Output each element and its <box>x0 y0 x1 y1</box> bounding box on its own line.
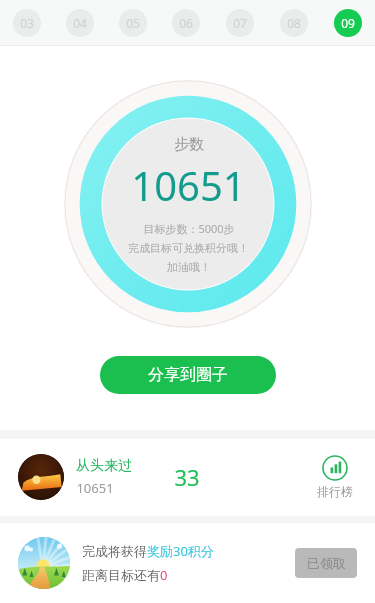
staticText: 03 <box>20 15 34 31</box>
staticText: 04 <box>73 15 87 31</box>
staticText: 09 <box>341 15 355 31</box>
staticText: 06 <box>179 15 193 31</box>
staticText: 距离目标还有0 <box>82 566 168 584</box>
button[interactable]: 排行榜 <box>313 451 357 503</box>
button[interactable]: 04 <box>66 9 94 37</box>
button[interactable]: 分享到圈子 <box>100 356 276 394</box>
staticText: 已领取 <box>307 555 346 571</box>
staticText: 从头来过 <box>76 457 132 475</box>
staticText: 排行榜 <box>317 484 353 499</box>
button[interactable]: 09 <box>334 9 362 37</box>
button[interactable]: 完成将获得奖励30积分 <box>0 523 375 603</box>
button[interactable]: 08 <box>280 9 308 37</box>
staticText: 07 <box>233 15 247 31</box>
staticText: 05 <box>126 15 140 31</box>
button[interactable]: 06 <box>172 9 200 37</box>
button[interactable]: 05 <box>119 9 147 37</box>
staticText: 加油哦！ <box>167 260 211 274</box>
button[interactable]: 07 <box>226 9 254 37</box>
button[interactable]: 已领取 <box>295 548 357 578</box>
staticText: 10651 <box>76 479 114 497</box>
staticText: 08 <box>287 15 301 31</box>
staticText: 完成目标可兑换积分哦！ <box>128 241 249 255</box>
staticText: 完成将获得奖励30积分 <box>82 542 214 560</box>
staticText: 分享到圈子 <box>148 365 228 385</box>
staticText: 10651 <box>131 158 246 212</box>
staticText: 目标步数：5000步 <box>143 221 235 236</box>
button[interactable]: 03 <box>13 9 41 37</box>
button[interactable]: 从头来过 <box>0 438 375 516</box>
staticText: 33 <box>174 462 200 492</box>
other: 排行榜 <box>322 455 348 481</box>
staticText: 步数 <box>174 135 204 154</box>
